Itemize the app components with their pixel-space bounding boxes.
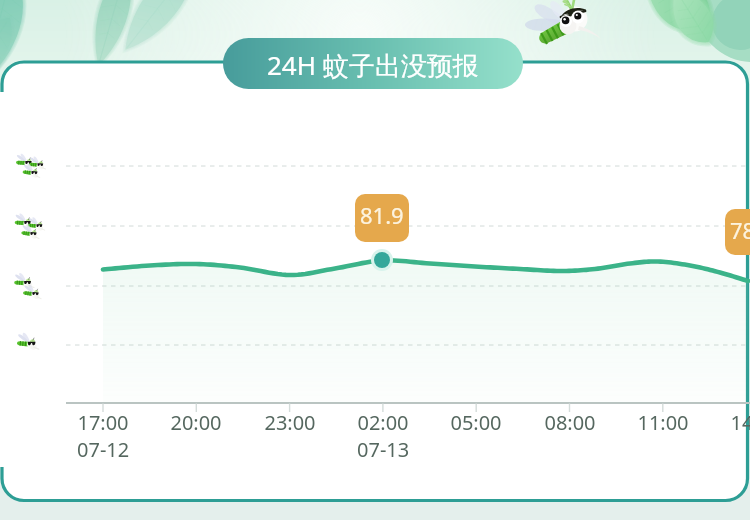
staticText: 02:00 <box>357 409 409 436</box>
staticText: 81.9 <box>360 200 404 230</box>
button[interactable]: 24H 蚊子出没预报 <box>223 38 523 89</box>
staticText: 78.2 <box>730 215 750 245</box>
button[interactable]: 78.2 <box>725 209 750 255</box>
staticText: 17:00 <box>77 409 129 436</box>
staticText: 07-12 <box>77 436 130 463</box>
staticText: 05:00 <box>450 409 502 436</box>
staticText: 20:00 <box>170 409 222 436</box>
staticText: 24H 蚊子出没预报 <box>267 47 479 83</box>
staticText: 11:00 <box>637 409 689 436</box>
staticText: 07-13 <box>357 436 410 463</box>
button[interactable]: 81.9 <box>355 194 409 242</box>
staticText: 14:00 <box>730 409 750 436</box>
staticText: 23:00 <box>264 409 316 436</box>
staticText: 08:00 <box>544 409 596 436</box>
